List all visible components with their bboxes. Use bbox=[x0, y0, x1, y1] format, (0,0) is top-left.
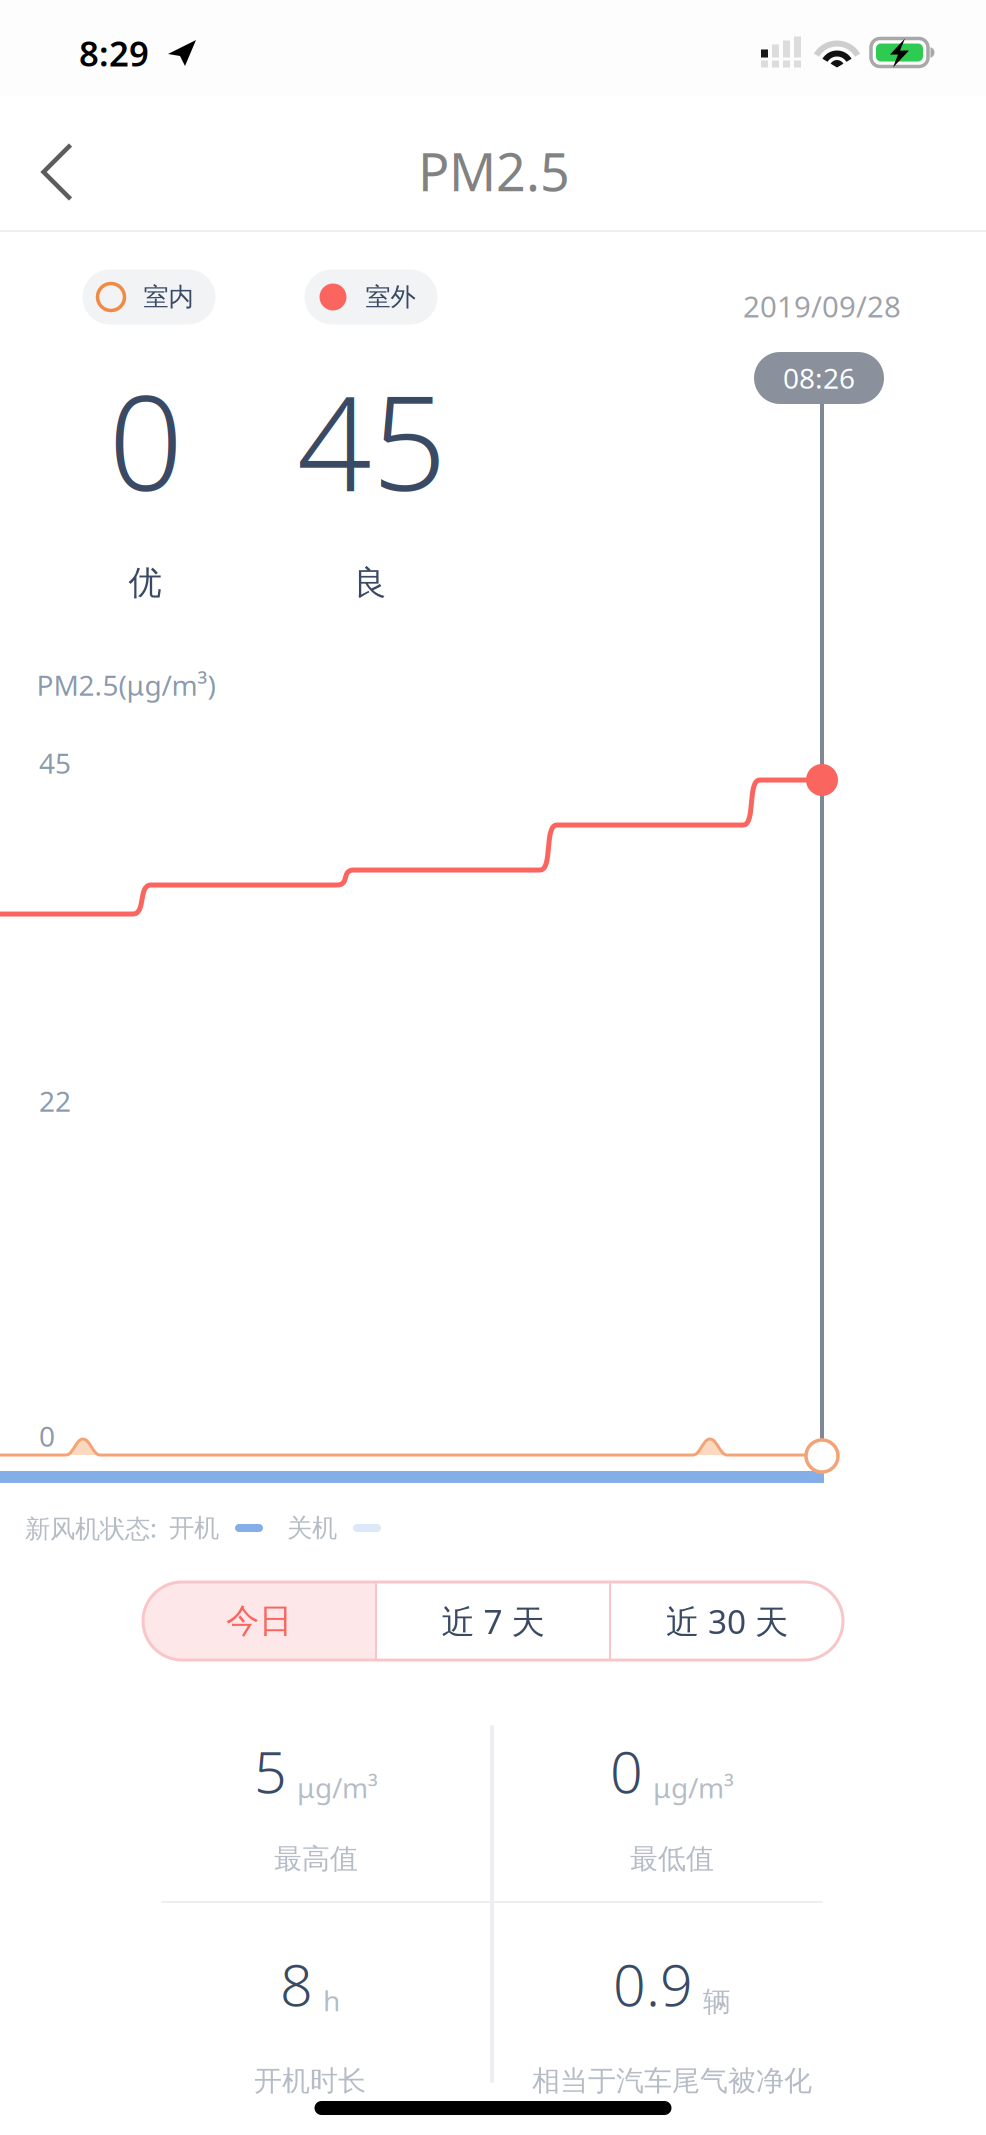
staticText: 0 bbox=[39, 1417, 55, 1455]
staticText: 0 bbox=[610, 1733, 643, 1809]
staticText: μg/m³ bbox=[297, 1769, 378, 1806]
staticText: 新风机状态: bbox=[25, 1511, 157, 1545]
staticText: 5 bbox=[254, 1733, 287, 1809]
staticText: 45 bbox=[297, 353, 447, 527]
staticText: 今日 bbox=[226, 1600, 292, 1641]
button[interactable]: 近 7 天 bbox=[377, 1582, 609, 1660]
staticText: 关机 bbox=[287, 1512, 337, 1543]
staticText: 8:29 bbox=[79, 30, 149, 76]
staticText: h bbox=[323, 1982, 340, 2019]
staticText: 22 bbox=[39, 1082, 71, 1120]
button[interactable]: 室外 bbox=[304, 269, 437, 324]
staticText: 2019/09/28 bbox=[743, 286, 901, 325]
staticText: 近 30 天 bbox=[666, 1599, 788, 1643]
staticText: μg/m³ bbox=[653, 1769, 734, 1806]
staticText: 0.9 bbox=[613, 1946, 693, 2022]
staticText: 良 bbox=[353, 562, 386, 603]
staticText: PM2.5(μg/m³) bbox=[36, 666, 215, 704]
staticText: 室内 bbox=[143, 281, 193, 312]
staticText: 08:26 bbox=[783, 359, 855, 397]
staticText: 0 bbox=[108, 353, 183, 527]
staticText: 8 bbox=[280, 1946, 313, 2022]
button[interactable]: 室内 bbox=[82, 269, 215, 324]
staticText: 最低值 bbox=[630, 1842, 714, 1876]
staticText: 相当于汽车尾气被净化 bbox=[532, 2064, 812, 2098]
staticText: 近 7 天 bbox=[441, 1599, 544, 1643]
staticText: 45 bbox=[39, 744, 71, 782]
staticText: 开机时长 bbox=[254, 2064, 366, 2098]
staticText: 辆 bbox=[703, 1985, 731, 2019]
staticText: 优 bbox=[128, 562, 161, 603]
button[interactable]: 近 30 天 bbox=[611, 1582, 843, 1660]
staticText: 开机 bbox=[169, 1512, 219, 1543]
staticText: 室外 bbox=[365, 281, 415, 312]
staticText: 最高值 bbox=[274, 1842, 358, 1876]
button[interactable]: Back bbox=[9, 113, 104, 231]
button[interactable]: 今日 bbox=[143, 1582, 375, 1660]
staticText: PM2.5 bbox=[418, 136, 570, 206]
